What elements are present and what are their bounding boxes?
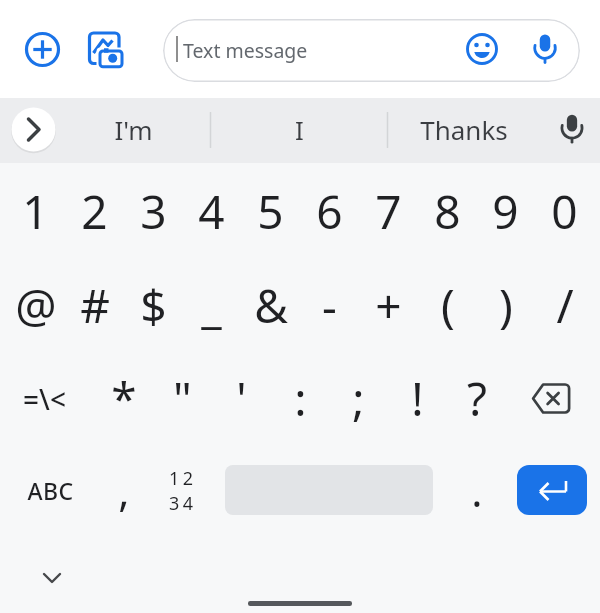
staticText: + xyxy=(375,274,402,337)
button[interactable]: . xyxy=(447,445,506,536)
staticText: / xyxy=(556,274,574,337)
button[interactable]: 7 xyxy=(359,164,418,258)
staticText: & xyxy=(254,274,288,337)
button[interactable]: 5 xyxy=(241,164,300,258)
staticText: I'm xyxy=(114,112,153,147)
button[interactable]: I'm xyxy=(56,97,210,162)
staticText: 5 xyxy=(257,180,284,243)
staticText: @ xyxy=(15,274,57,337)
staticText: 3 xyxy=(140,180,167,243)
button[interactable]: / xyxy=(535,258,594,352)
staticText: ABC xyxy=(27,475,74,506)
staticText: : xyxy=(294,367,307,430)
button[interactable]: ABC xyxy=(6,445,94,536)
button[interactable]: I xyxy=(211,97,387,162)
button[interactable]: 1 xyxy=(6,164,65,258)
staticText: ; xyxy=(352,367,365,430)
button[interactable]: - xyxy=(300,258,359,352)
button[interactable]: ) xyxy=(476,258,535,352)
button[interactable]: ? xyxy=(447,352,506,445)
button[interactable]: 4 xyxy=(182,164,241,258)
button[interactable]: Thanks xyxy=(388,97,540,162)
button[interactable]: _ xyxy=(182,258,241,352)
staticText: 2 xyxy=(81,180,108,243)
staticText: ? xyxy=(467,367,487,430)
staticText: ! xyxy=(411,367,424,430)
staticText: 7 xyxy=(375,180,402,243)
staticText: _ xyxy=(201,274,222,337)
staticText: 6 xyxy=(316,180,343,243)
staticText: ' xyxy=(236,367,247,430)
staticText: " xyxy=(173,367,192,430)
button[interactable]: 3 xyxy=(124,164,183,258)
button[interactable]: 12 xyxy=(153,445,212,536)
button[interactable]: # xyxy=(65,258,124,352)
button[interactable]: & xyxy=(241,258,300,352)
staticText: # xyxy=(80,274,110,337)
staticText: Text message xyxy=(183,37,308,64)
button[interactable]: =\< xyxy=(0,352,88,445)
staticText: 34 xyxy=(169,491,197,516)
staticText: =\< xyxy=(23,380,66,418)
button[interactable]: Text message xyxy=(163,19,580,82)
button[interactable] xyxy=(523,26,567,74)
button[interactable] xyxy=(548,103,596,155)
button[interactable]: , xyxy=(94,445,153,536)
staticText: * xyxy=(111,367,137,430)
staticText: , xyxy=(118,462,130,519)
button[interactable]: 6 xyxy=(300,164,359,258)
button[interactable]: 9 xyxy=(476,164,535,258)
staticText: - xyxy=(322,274,337,337)
button[interactable] xyxy=(11,107,56,152)
staticText: 12 xyxy=(169,466,197,491)
staticText: 9 xyxy=(492,180,519,243)
button[interactable] xyxy=(34,560,70,596)
staticText: $ xyxy=(140,274,167,337)
button[interactable]: 8 xyxy=(418,164,477,258)
button[interactable]: @ xyxy=(6,258,65,352)
button[interactable] xyxy=(84,26,132,74)
button[interactable]: : xyxy=(271,352,330,445)
button[interactable]: " xyxy=(153,352,212,445)
staticText: ) xyxy=(499,274,513,337)
staticText: . xyxy=(471,462,483,519)
button[interactable]: 2 xyxy=(65,164,124,258)
button[interactable]: ! xyxy=(388,352,447,445)
button[interactable] xyxy=(506,352,594,445)
staticText: 0 xyxy=(551,180,578,243)
button[interactable] xyxy=(517,465,587,515)
button[interactable]: * xyxy=(94,352,153,445)
button[interactable] xyxy=(18,26,66,74)
staticText: ( xyxy=(441,274,455,337)
button[interactable] xyxy=(460,28,504,72)
button[interactable]: ( xyxy=(418,258,477,352)
staticText: 4 xyxy=(198,180,225,243)
staticText: Thanks xyxy=(420,112,508,147)
staticText: 1 xyxy=(22,180,49,243)
button[interactable]: $ xyxy=(124,258,183,352)
button[interactable]: ' xyxy=(212,352,271,445)
button[interactable]: 0 xyxy=(535,164,594,258)
staticText: I xyxy=(295,112,304,147)
button[interactable]: ; xyxy=(329,352,388,445)
staticText: 8 xyxy=(434,180,461,243)
button[interactable]: + xyxy=(359,258,418,352)
